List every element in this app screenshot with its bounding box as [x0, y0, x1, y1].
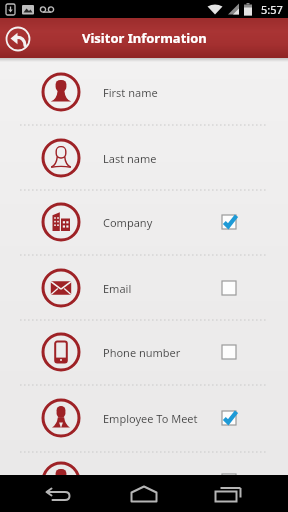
- button[interactable]: First name: [0, 59, 288, 125]
- staticText: Email: [103, 281, 132, 296]
- staticText: Company: [103, 215, 153, 230]
- button[interactable]: Phone number: [0, 319, 288, 385]
- button[interactable]: Company: [0, 189, 288, 255]
- staticText: Employee To Meet: [103, 411, 198, 426]
- button[interactable]: [120, 475, 168, 512]
- staticText: Last name: [103, 151, 157, 166]
- staticText: Visitor Information: [82, 29, 207, 47]
- staticText: 5:57: [261, 2, 283, 17]
- button[interactable]: Email: [0, 255, 288, 321]
- button[interactable]: [0, 18, 38, 58]
- button[interactable]: [0, 448, 288, 475]
- button[interactable]: Employee To Meet: [0, 385, 288, 451]
- button[interactable]: Last name: [0, 125, 288, 191]
- staticText: Phone number: [103, 345, 181, 360]
- button[interactable]: [204, 475, 252, 512]
- button[interactable]: [36, 475, 84, 512]
- staticText: First name: [103, 85, 158, 100]
